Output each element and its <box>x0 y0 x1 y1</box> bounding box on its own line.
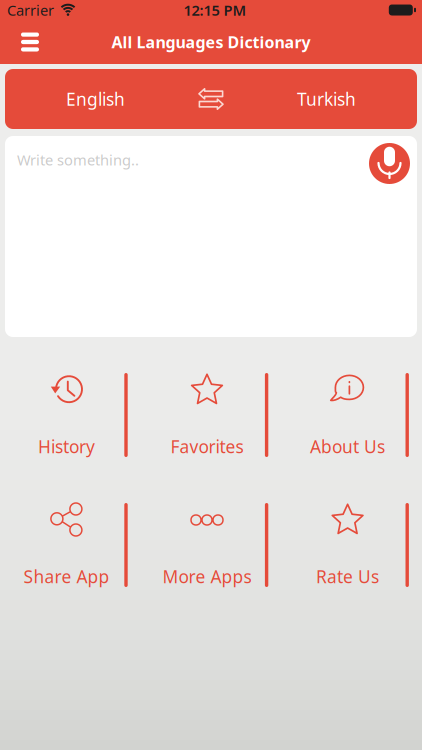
staticText: More Apps <box>162 565 251 588</box>
staticText: About Us <box>310 435 385 458</box>
staticText: All Languages Dictionary <box>111 31 310 53</box>
staticText: 12:15 PM <box>183 0 246 20</box>
button[interactable]: Menu <box>8 20 52 64</box>
button[interactable]: Rate Us <box>281 480 422 610</box>
staticText: Carrier <box>7 0 54 20</box>
button[interactable]: More Apps <box>141 480 281 610</box>
button[interactable]: Swap languages <box>186 69 236 129</box>
button[interactable]: History <box>0 350 141 480</box>
button[interactable]: Turkish <box>236 69 417 129</box>
button[interactable]: Share App <box>0 480 141 610</box>
button[interactable]: Favorites <box>141 350 281 480</box>
staticText: Share App <box>23 565 109 588</box>
staticText: History <box>38 435 95 458</box>
staticText: Write something.. <box>17 150 139 169</box>
staticText: Favorites <box>170 435 243 458</box>
button[interactable]: Voice input <box>363 137 416 190</box>
button[interactable]: English <box>5 69 186 129</box>
button[interactable]: About Us <box>281 350 422 480</box>
staticText: Turkish <box>297 87 356 110</box>
staticText: Rate Us <box>316 565 379 588</box>
staticText: English <box>66 87 125 110</box>
